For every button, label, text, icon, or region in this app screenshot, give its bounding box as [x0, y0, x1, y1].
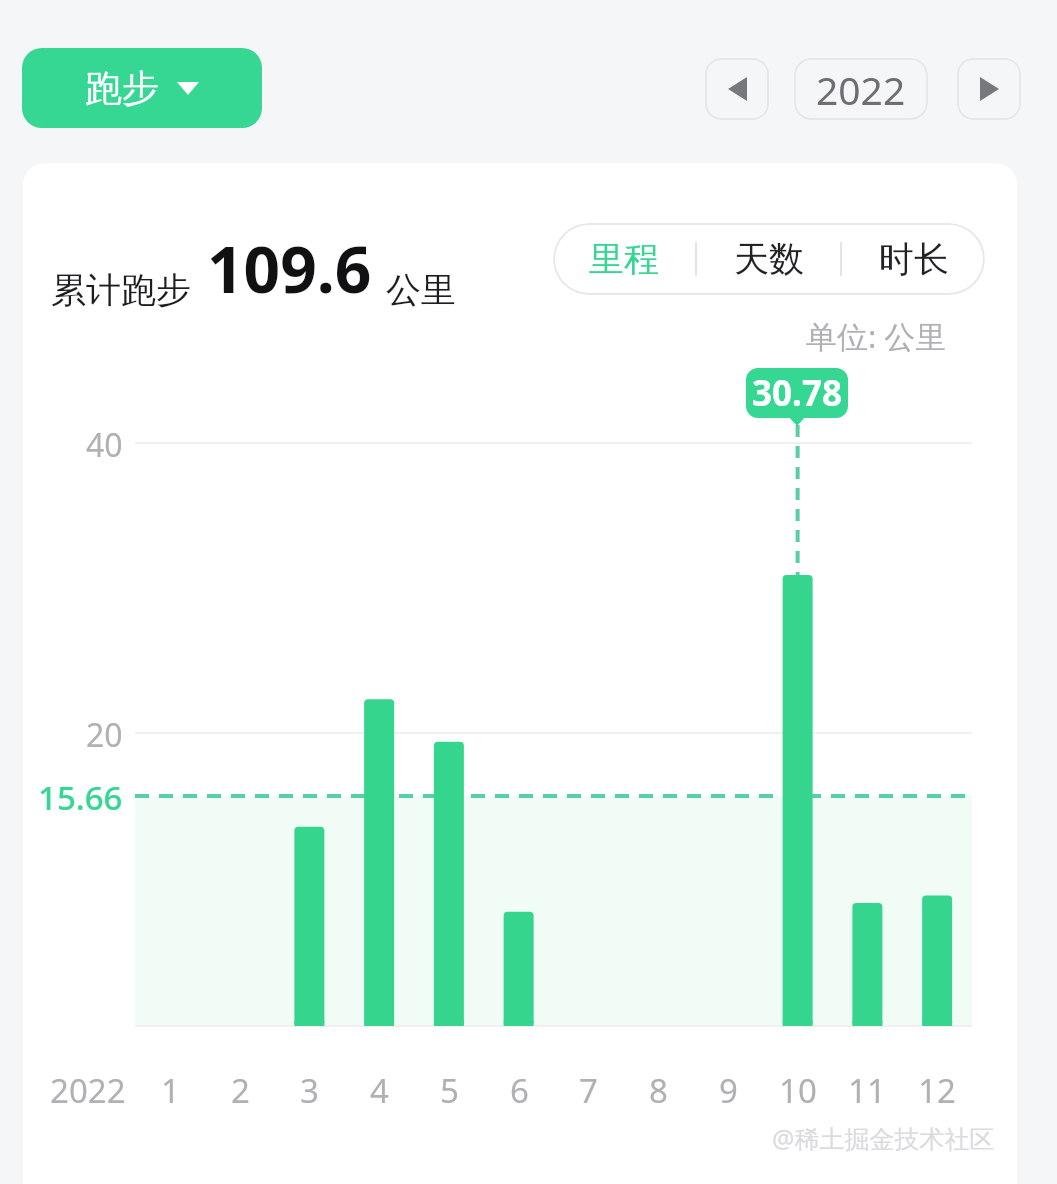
- button[interactable]: 2022: [794, 58, 928, 120]
- staticText: 天数: [734, 237, 804, 281]
- staticText: 单位: 公里: [806, 315, 947, 357]
- staticText: 109.6: [207, 225, 372, 312]
- button[interactable]: 时长: [842, 223, 985, 295]
- button[interactable]: 里程: [553, 223, 695, 295]
- staticText: 2022: [50, 1068, 126, 1113]
- staticText: 9: [719, 1068, 738, 1113]
- staticText: 4: [370, 1068, 389, 1113]
- staticText: 11: [848, 1068, 886, 1113]
- staticText: 公里: [386, 268, 456, 312]
- staticText: 3: [300, 1068, 319, 1113]
- button[interactable]: 天数: [697, 223, 840, 295]
- staticText: 40: [86, 423, 123, 467]
- staticText: 累计跑步: [51, 268, 191, 312]
- staticText: 7: [579, 1068, 598, 1113]
- staticText: 30.78: [752, 369, 842, 417]
- button[interactable]: 跑步: [22, 48, 262, 128]
- staticText: 1: [161, 1068, 180, 1113]
- staticText: 6: [510, 1068, 529, 1113]
- staticText: 8: [649, 1068, 668, 1113]
- staticText: 里程: [589, 237, 659, 281]
- staticText: 5: [440, 1068, 459, 1113]
- button[interactable]: Next year: [957, 58, 1021, 120]
- staticText: 15.66: [38, 775, 123, 820]
- staticText: 2022: [816, 63, 906, 116]
- staticText: 2: [231, 1068, 250, 1113]
- button[interactable]: Previous year: [705, 58, 769, 120]
- staticText: @稀土掘金技术社区: [772, 1121, 995, 1155]
- staticText: 20: [86, 713, 123, 757]
- staticText: 10: [779, 1068, 817, 1113]
- staticText: 12: [918, 1068, 956, 1113]
- staticText: 跑步: [85, 65, 159, 112]
- staticText: 时长: [879, 237, 949, 281]
